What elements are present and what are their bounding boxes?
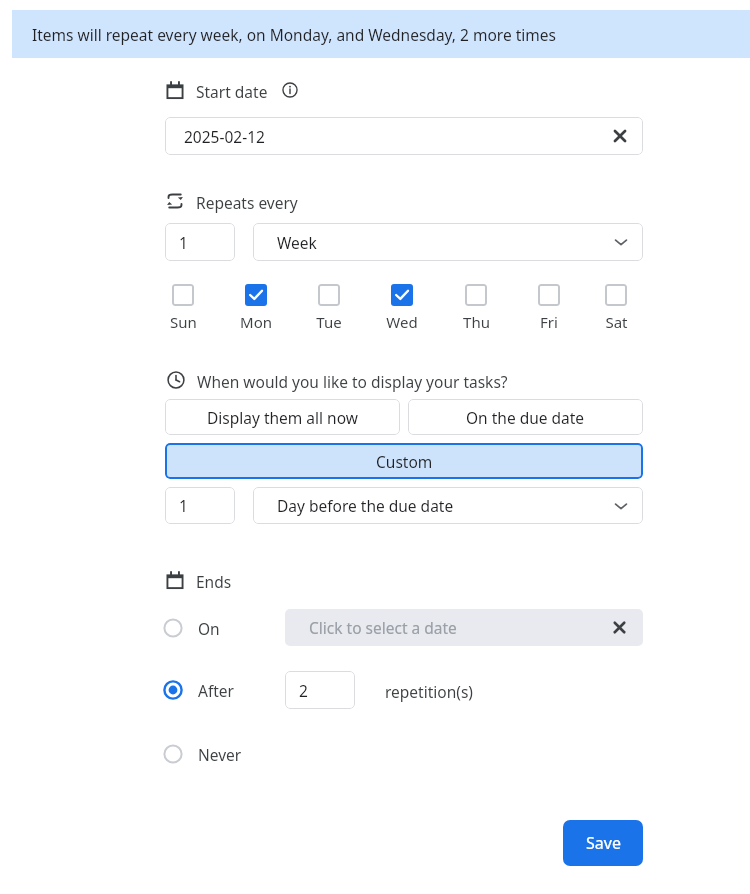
staticText: Ends (196, 571, 232, 592)
staticText: 1 (179, 495, 188, 516)
button[interactable]: Custom (165, 443, 643, 479)
staticText: Sat (605, 312, 628, 332)
button[interactable]: 2025-02-12 (165, 117, 643, 155)
button[interactable]: Save (563, 820, 643, 866)
button[interactable]: After (163, 678, 278, 702)
button[interactable]: 1 (165, 487, 235, 524)
staticText: 2025-02-12 (184, 126, 265, 147)
button[interactable]: Day before the due date (253, 487, 643, 524)
staticText: Never (198, 744, 242, 765)
button[interactable]: On the due date (408, 399, 643, 435)
button[interactable]: Tue (305, 284, 353, 332)
staticText: Custom (376, 451, 433, 472)
staticText: Wed (386, 312, 418, 332)
staticText: After (198, 680, 234, 701)
staticText: Thu (463, 312, 490, 332)
button[interactable]: Thu (452, 284, 500, 332)
staticText: Week (277, 232, 317, 253)
staticText: Fri (540, 312, 558, 332)
staticText: Tue (316, 312, 342, 332)
button[interactable]: Click to select a date (285, 609, 643, 646)
button[interactable]: Never (163, 742, 283, 766)
staticText: On (198, 618, 220, 639)
staticText: Save (586, 832, 621, 854)
button[interactable]: Display them all now (165, 399, 400, 435)
staticText: 2 (299, 680, 308, 701)
staticText: Start date (196, 81, 268, 102)
staticText: Click to select a date (309, 617, 457, 638)
button[interactable]: Info (282, 82, 298, 98)
button[interactable]: Fri (525, 284, 573, 332)
other: Clear end date (611, 619, 628, 636)
staticText: Repeats every (196, 192, 298, 213)
button[interactable]: 1 (165, 223, 235, 261)
button[interactable]: Items will repeat every week, on Monday,… (12, 10, 750, 58)
staticText: Mon (240, 312, 272, 332)
button[interactable]: On (163, 616, 273, 640)
staticText: Day before the due date (277, 495, 454, 516)
button[interactable]: Wed (378, 284, 426, 332)
button[interactable]: Mon (232, 284, 280, 332)
staticText: When would you like to display your task… (197, 371, 508, 392)
staticText: Sun (170, 312, 197, 332)
staticText: On the due date (466, 407, 585, 428)
staticText: repetition(s) (385, 681, 473, 702)
button[interactable]: 2 (285, 671, 355, 709)
button[interactable]: Sun (159, 284, 207, 332)
button[interactable]: Week (253, 223, 643, 261)
button[interactable]: Sat (592, 284, 640, 332)
staticText: Display them all now (207, 407, 358, 428)
staticText: 1 (179, 232, 188, 253)
staticText: Items will repeat every week, on Monday,… (32, 24, 556, 45)
button[interactable]: Clear start date (611, 127, 629, 145)
